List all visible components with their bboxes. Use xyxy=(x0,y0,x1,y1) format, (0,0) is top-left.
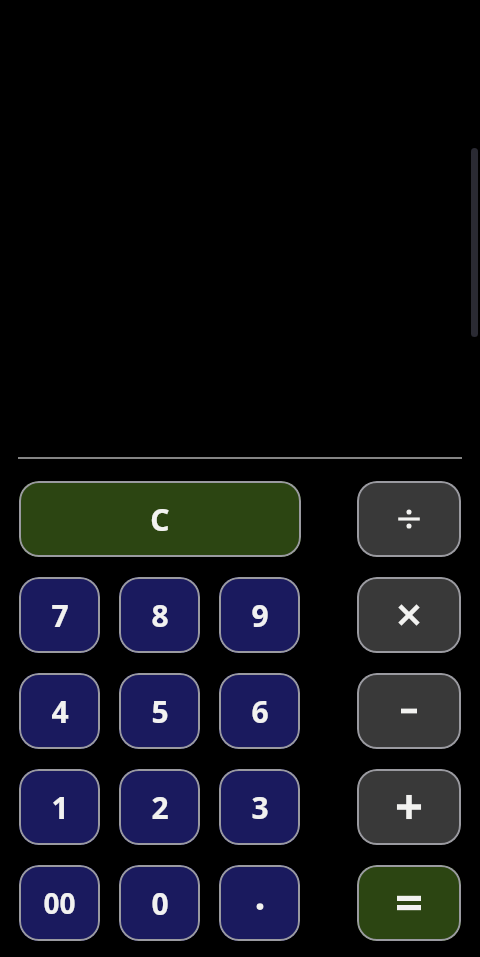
staticText: 00 xyxy=(43,884,76,922)
staticText: 0 xyxy=(151,883,169,924)
button[interactable]: Divide xyxy=(357,481,461,557)
button[interactable]: Plus xyxy=(357,769,461,845)
staticText: 9 xyxy=(251,595,269,636)
button[interactable]: Clear xyxy=(19,481,301,557)
staticText: 2 xyxy=(151,787,169,828)
button[interactable]: 1 xyxy=(19,769,100,845)
button[interactable]: Minus xyxy=(357,673,461,749)
button[interactable]: Equals xyxy=(357,865,461,941)
button[interactable]: Multiply xyxy=(357,577,461,653)
button[interactable]: 9 xyxy=(219,577,300,653)
staticText: 7 xyxy=(51,595,69,636)
staticText: 6 xyxy=(251,691,269,732)
button[interactable]: 3 xyxy=(219,769,300,845)
button[interactable]: 7 xyxy=(19,577,100,653)
staticText: C xyxy=(150,499,170,540)
button[interactable]: 0 xyxy=(119,865,200,941)
button[interactable]: Decimal point xyxy=(219,865,300,941)
staticText: 4 xyxy=(51,691,69,732)
staticText: 5 xyxy=(151,691,169,732)
button[interactable]: 2 xyxy=(119,769,200,845)
staticText: 1 xyxy=(51,787,69,828)
button[interactable]: 6 xyxy=(219,673,300,749)
button[interactable]: 5 xyxy=(119,673,200,749)
button[interactable]: 4 xyxy=(19,673,100,749)
staticText: 8 xyxy=(151,595,169,636)
button[interactable]: 8 xyxy=(119,577,200,653)
staticText: 3 xyxy=(251,787,269,828)
button[interactable]: 00 xyxy=(19,865,100,941)
